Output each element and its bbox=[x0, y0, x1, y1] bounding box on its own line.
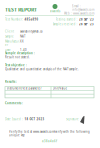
staticText: Unit/Value bbox=[52, 87, 67, 90]
staticText: Test Number: bbox=[5, 18, 23, 21]
staticText: XX bbox=[20, 40, 24, 43]
staticText: Sample bbox=[5, 35, 14, 38]
staticText: 28 SEP '23 bbox=[79, 18, 94, 21]
staticText: 1.40 bbox=[20, 48, 27, 52]
staticText: 485a890 bbox=[24, 18, 38, 21]
staticText: Instrument/Test parameter bbox=[6, 87, 41, 90]
staticText: Web : www.awards.com bbox=[64, 12, 94, 15]
staticText: Results : bbox=[5, 80, 17, 83]
staticText: Testing started : bbox=[55, 18, 77, 21]
staticText: TEST REPORT bbox=[5, 6, 37, 13]
staticText: availability@lab.ca bbox=[20, 30, 42, 33]
staticText: awards bbox=[50, 9, 60, 13]
staticText: Comments : bbox=[5, 101, 23, 105]
staticText: Qualitative and quantitative analysis of… bbox=[5, 67, 79, 71]
staticText: a38a4a6f bbox=[42, 139, 57, 143]
staticText: 18 OCT 2023 bbox=[24, 117, 44, 121]
staticText: Date Issued : bbox=[5, 117, 23, 121]
staticText: Manufacturer bbox=[5, 40, 20, 47]
staticText: Sample description : bbox=[5, 51, 35, 55]
staticText: E-mail : info@awards.com bbox=[72, 4, 94, 12]
staticText: Date bbox=[5, 48, 11, 52]
staticText: Result not stated. bbox=[5, 55, 30, 59]
staticText: Verify the test at www.awards.com/verify… bbox=[9, 130, 90, 137]
staticText: Client bbox=[5, 30, 14, 33]
staticText: Samples received : bbox=[52, 22, 77, 26]
staticText: NAT bbox=[20, 35, 25, 38]
staticText: 28 SEP '23 bbox=[79, 22, 94, 26]
staticText: Test objective : bbox=[5, 63, 27, 67]
staticText: Signature : bbox=[66, 117, 81, 121]
